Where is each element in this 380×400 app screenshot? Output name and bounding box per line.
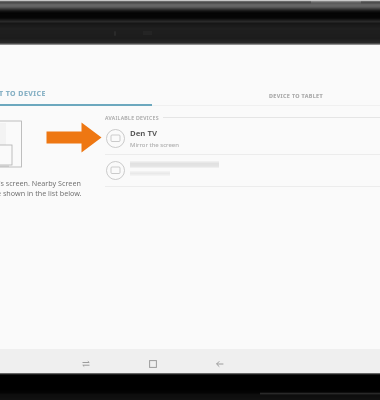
- button[interactable]: T TO DEVICE: [0, 81, 152, 105]
- staticText: Mirror the screen: [130, 141, 179, 149]
- button[interactable]: Recent apps: [68, 349, 104, 373]
- staticText: DEVICE TO TABLET: [269, 92, 323, 99]
- staticText: T TO DEVICE: [0, 89, 46, 99]
- staticText: e shown in the list below.: [0, 188, 82, 198]
- button[interactable]: Back: [202, 349, 238, 373]
- button[interactable]: [105, 155, 380, 186]
- button[interactable]: DEVICE TO TABLET: [228, 81, 364, 105]
- button[interactable]: Den TV: [105, 122, 380, 154]
- button[interactable]: Home: [135, 349, 171, 373]
- staticText: 's screen. Nearby Screen: [0, 178, 81, 188]
- staticText: AVAILABLE DEVICES: [105, 114, 159, 121]
- staticText: Den TV: [130, 128, 158, 139]
